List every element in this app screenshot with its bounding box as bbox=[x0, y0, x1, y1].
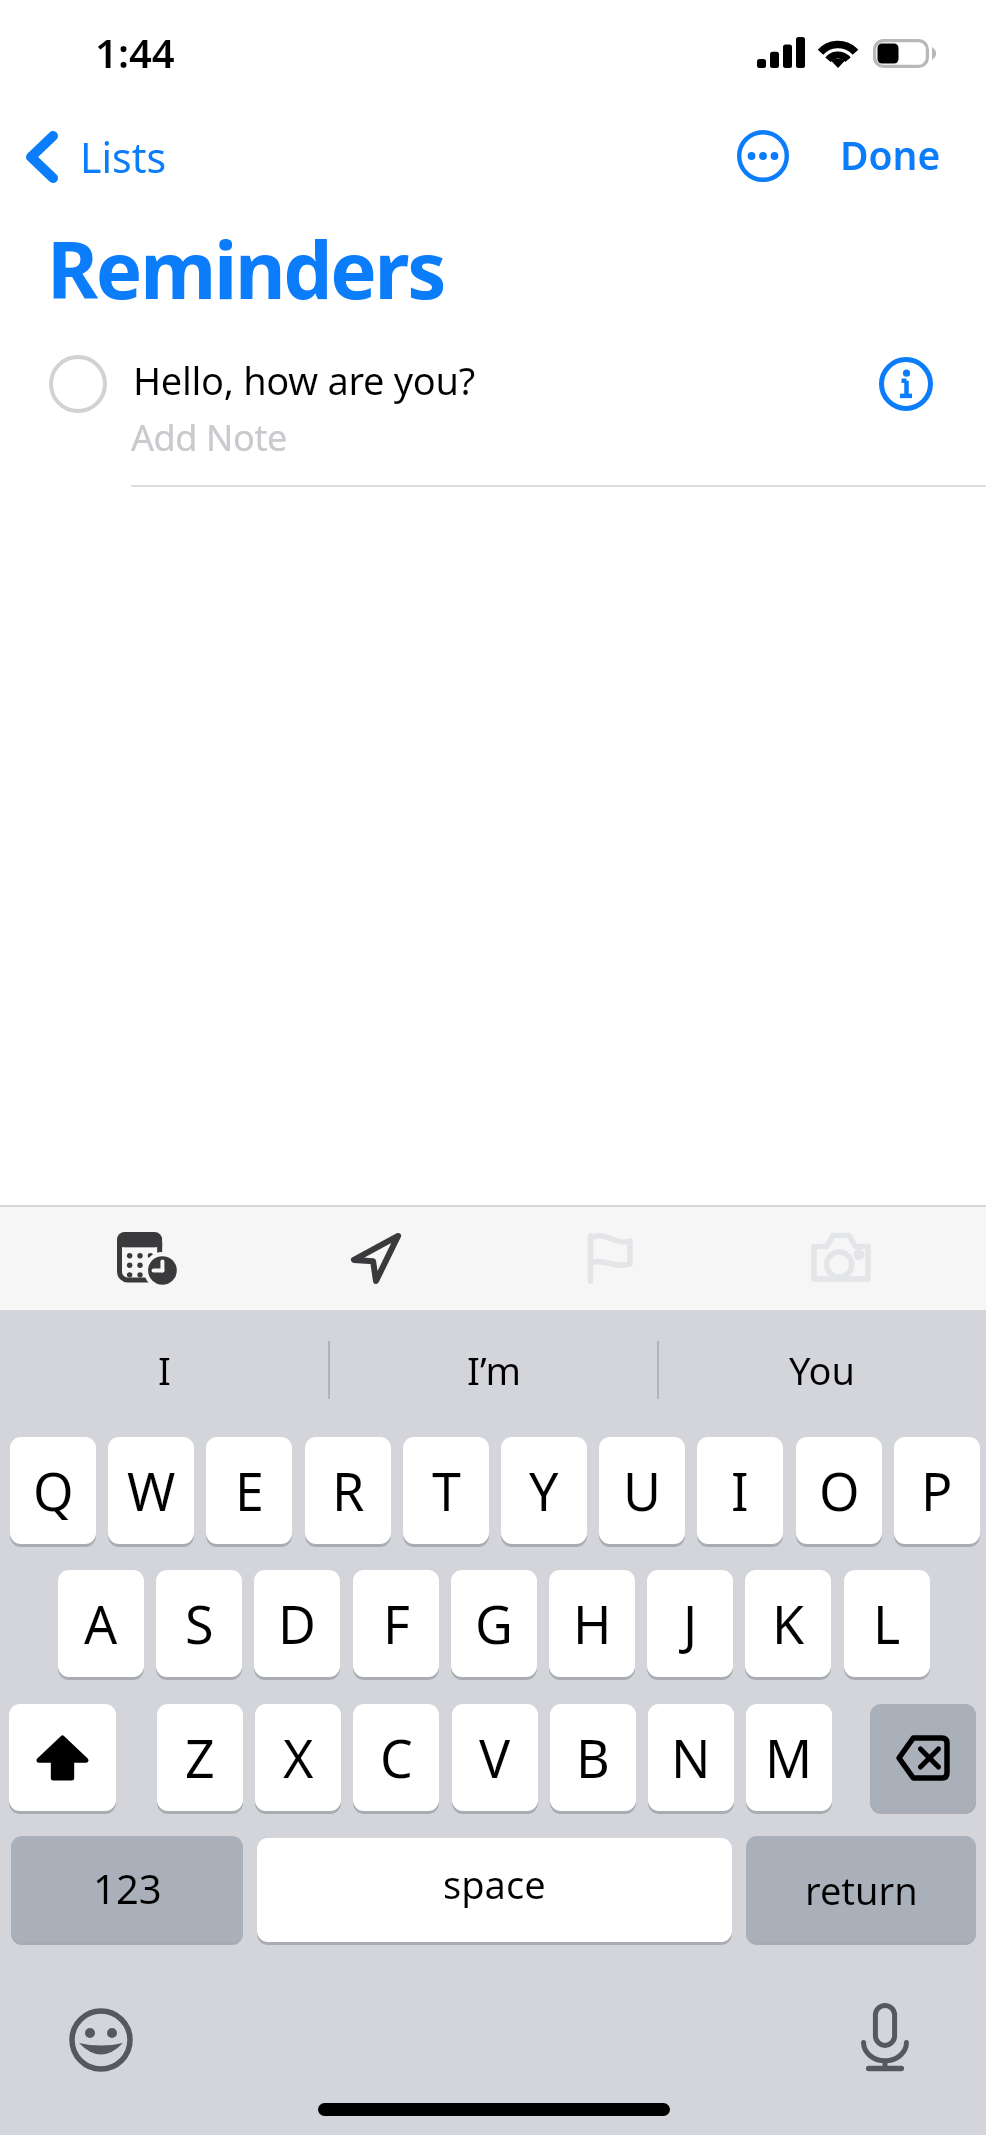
button[interactable]: Backspace bbox=[870, 1704, 976, 1811]
staticText: G bbox=[475, 1588, 513, 1659]
staticText: Q bbox=[33, 1455, 74, 1526]
staticText: B bbox=[576, 1722, 610, 1793]
button[interactable]: Q bbox=[10, 1437, 96, 1544]
staticText: 1:44 bbox=[95, 25, 175, 79]
staticText: A bbox=[84, 1588, 118, 1659]
staticText: L bbox=[873, 1588, 901, 1659]
button[interactable]: P bbox=[894, 1437, 980, 1544]
button[interactable]: More options bbox=[731, 124, 795, 188]
staticText: F bbox=[383, 1588, 410, 1659]
button[interactable]: 123 bbox=[11, 1836, 243, 1942]
button[interactable]: Z bbox=[157, 1704, 243, 1811]
button[interactable]: Add location bbox=[285, 1205, 466, 1310]
button[interactable]: B bbox=[550, 1704, 636, 1811]
staticText: X bbox=[283, 1722, 314, 1793]
button[interactable]: Lists bbox=[26, 122, 167, 192]
button[interactable]: D bbox=[254, 1570, 340, 1677]
button[interactable]: C bbox=[353, 1704, 439, 1811]
staticText: N bbox=[671, 1722, 711, 1793]
button[interactable]: Hello, how are you? bbox=[131, 350, 871, 408]
button[interactable]: O bbox=[796, 1437, 882, 1544]
staticText: R bbox=[332, 1455, 365, 1526]
button[interactable]: G bbox=[451, 1570, 537, 1677]
staticText: space bbox=[443, 1858, 546, 1910]
staticText: D bbox=[278, 1588, 316, 1659]
staticText: U bbox=[623, 1455, 662, 1526]
button[interactable]: return bbox=[746, 1836, 976, 1942]
button[interactable]: I bbox=[0, 1310, 328, 1429]
staticText: Add Note bbox=[131, 413, 287, 462]
button[interactable]: I bbox=[697, 1437, 783, 1544]
staticText: E bbox=[235, 1455, 264, 1526]
button[interactable]: R bbox=[305, 1437, 391, 1544]
staticText: I’m bbox=[467, 1344, 521, 1396]
staticText: T bbox=[432, 1455, 461, 1526]
staticText: H bbox=[573, 1588, 612, 1659]
button[interactable]: Dictate bbox=[853, 2002, 917, 2072]
button[interactable]: N bbox=[648, 1704, 734, 1811]
button[interactable]: Flag bbox=[519, 1205, 700, 1310]
button[interactable]: X bbox=[255, 1704, 341, 1811]
staticText: J bbox=[683, 1588, 698, 1659]
button[interactable]: Add date bbox=[57, 1205, 238, 1310]
staticText: M bbox=[765, 1722, 813, 1793]
button[interactable]: L bbox=[844, 1570, 930, 1677]
button[interactable]: I’m bbox=[330, 1310, 657, 1429]
button[interactable]: Mark complete bbox=[49, 355, 107, 413]
staticText: C bbox=[380, 1722, 413, 1793]
button[interactable]: V bbox=[452, 1704, 538, 1811]
button[interactable]: U bbox=[599, 1437, 685, 1544]
button[interactable]: H bbox=[549, 1570, 635, 1677]
button[interactable]: Emoji bbox=[69, 2008, 133, 2072]
button[interactable]: J bbox=[647, 1570, 733, 1677]
button[interactable]: Shift bbox=[9, 1704, 116, 1811]
button[interactable]: space bbox=[257, 1838, 732, 1942]
staticText: K bbox=[772, 1588, 805, 1659]
staticText: Z bbox=[185, 1722, 215, 1793]
button[interactable]: Details bbox=[879, 357, 933, 411]
staticText: 123 bbox=[93, 1861, 162, 1915]
staticText: Y bbox=[529, 1455, 559, 1526]
button[interactable]: Add Note bbox=[131, 409, 871, 467]
staticText: O bbox=[819, 1455, 860, 1526]
staticText: Done bbox=[840, 128, 941, 181]
button[interactable]: Y bbox=[501, 1437, 587, 1544]
button[interactable]: E bbox=[206, 1437, 292, 1544]
staticText: V bbox=[479, 1722, 511, 1793]
button[interactable]: K bbox=[745, 1570, 831, 1677]
staticText: Lists bbox=[80, 129, 167, 185]
staticText: W bbox=[127, 1455, 176, 1526]
staticText: Hello, how are you? bbox=[133, 354, 475, 406]
button[interactable]: S bbox=[156, 1570, 242, 1677]
staticText: I bbox=[158, 1344, 171, 1396]
button[interactable]: Add photo bbox=[750, 1205, 931, 1310]
button[interactable]: A bbox=[58, 1570, 144, 1677]
staticText: P bbox=[921, 1455, 953, 1526]
button[interactable]: Done bbox=[840, 128, 941, 181]
staticText: I bbox=[731, 1455, 749, 1526]
staticText: return bbox=[805, 1864, 918, 1916]
staticText: You bbox=[789, 1344, 856, 1396]
staticText: Reminders bbox=[47, 216, 444, 322]
button[interactable]: W bbox=[108, 1437, 194, 1544]
staticText: S bbox=[185, 1588, 214, 1659]
button[interactable]: F bbox=[353, 1570, 439, 1677]
button[interactable]: You bbox=[659, 1310, 986, 1429]
button[interactable]: M bbox=[746, 1704, 832, 1811]
button[interactable]: T bbox=[403, 1437, 489, 1544]
